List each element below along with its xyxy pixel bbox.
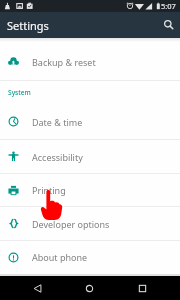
- button[interactable]: About phone: [0, 241, 180, 273]
- staticText: Backup & reset: [32, 56, 96, 68]
- staticText: About phone: [32, 251, 88, 263]
- staticText: Printing: [32, 184, 66, 196]
- button[interactable]: Printing: [0, 174, 180, 206]
- button[interactable]: Accessibility: [0, 140, 180, 173]
- button[interactable]: Date & time: [0, 104, 180, 139]
- button[interactable]: Backup & reset: [0, 43, 180, 80]
- staticText: Accessibility: [32, 151, 83, 163]
- button[interactable]: Search: [158, 14, 180, 36]
- button[interactable]: Developer options: [0, 207, 180, 240]
- button[interactable]: Home: [63, 276, 116, 300]
- button[interactable]: Back: [11, 276, 63, 300]
- staticText: 5:07: [161, 1, 176, 11]
- button[interactable]: Recents: [116, 276, 169, 300]
- staticText: System: [8, 88, 31, 97]
- staticText: Developer options: [32, 218, 110, 230]
- staticText: Settings: [7, 18, 49, 33]
- staticText: Date & time: [32, 116, 83, 128]
